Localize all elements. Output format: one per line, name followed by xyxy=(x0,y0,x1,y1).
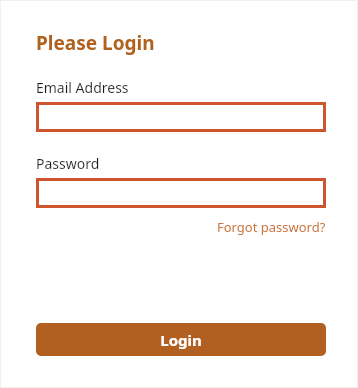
button[interactable] xyxy=(36,178,326,208)
staticText: Password xyxy=(36,154,100,173)
staticText: Login xyxy=(160,330,202,350)
button[interactable]: Login xyxy=(36,323,326,356)
staticText: Please Login xyxy=(36,30,155,56)
button[interactable] xyxy=(36,102,326,132)
button[interactable]: Forgot password? xyxy=(217,218,326,236)
staticText: Forgot password? xyxy=(217,218,326,236)
staticText: Email Address xyxy=(36,78,129,97)
